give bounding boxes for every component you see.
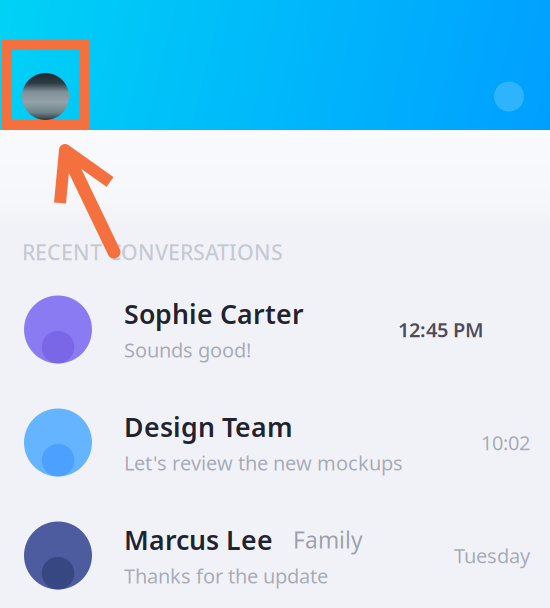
- button[interactable]: Search: [494, 81, 524, 111]
- staticText: Sounds good!: [124, 336, 251, 363]
- button[interactable]: Marcus Lee: [0, 499, 550, 608]
- staticText: Family: [293, 525, 363, 555]
- staticText: RECENT CONVERSATIONS: [22, 238, 283, 266]
- staticText: Let's review the new mockups: [124, 449, 403, 476]
- staticText: Marcus Lee: [124, 522, 273, 557]
- staticText: Design Team: [124, 409, 293, 444]
- button[interactable]: Design Team: [0, 386, 550, 499]
- staticText: 12:45 PM: [398, 316, 484, 343]
- staticText: 10:02: [481, 429, 530, 456]
- button[interactable]: Profile: [22, 73, 69, 120]
- staticText: Thanks for the update: [124, 562, 328, 589]
- button[interactable]: Sophie Carter: [0, 273, 550, 386]
- staticText: Sophie Carter: [124, 296, 304, 331]
- staticText: Tuesday: [454, 542, 530, 569]
